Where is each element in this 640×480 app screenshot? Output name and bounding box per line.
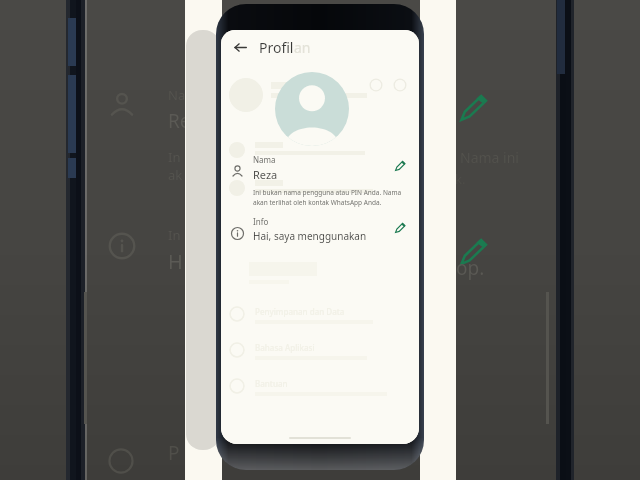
staticText: Hai, saya menggunakan WhatsApp. (253, 229, 389, 243)
staticText: akan terlihat oleh kontak WhatsApp Anda. (253, 198, 382, 207)
staticText: Na (168, 86, 186, 104)
button[interactable]: Edit nama (389, 154, 411, 176)
staticText: In (168, 226, 181, 244)
staticText: Ini bukan nama pengguna atau PIN Anda. N… (253, 188, 405, 197)
staticText: Nama (253, 154, 276, 165)
staticText: Profil (259, 38, 294, 57)
button[interactable]: Info (221, 216, 419, 250)
staticText: Info (253, 216, 269, 227)
staticText: Bahasa Aplikasi (255, 342, 315, 353)
staticText: Re (168, 108, 191, 134)
staticText: Nama ini (460, 148, 519, 167)
staticText: H (168, 248, 183, 275)
button[interactable]: Ubah foto profil (275, 72, 349, 146)
staticText: Bantuan (255, 378, 288, 389)
button[interactable]: Nama (221, 154, 419, 188)
staticText: Penyimpanan dan Data (255, 306, 345, 317)
staticText: In (168, 148, 181, 166)
staticText: P (168, 440, 180, 466)
staticText: Reza (253, 167, 278, 182)
staticText: ak (168, 166, 183, 184)
staticText: op. (456, 255, 485, 281)
button[interactable]: Kembali (225, 32, 255, 62)
button[interactable]: Edit info (389, 216, 411, 238)
staticText: an (294, 38, 311, 57)
staticText: k. (455, 170, 466, 188)
